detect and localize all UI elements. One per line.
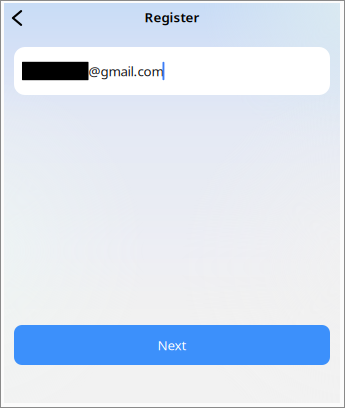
button[interactable]: Email address [14,47,330,95]
staticText: @gmail.com [88,62,163,80]
staticText: Register [144,8,199,26]
staticText: Next [157,336,186,354]
button[interactable]: Back [5,1,31,33]
button[interactable]: Next [14,325,330,365]
